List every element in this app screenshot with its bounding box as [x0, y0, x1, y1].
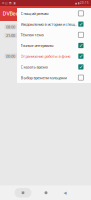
staticText: Сказать время [20, 64, 47, 69]
button[interactable]: Выбор времени кольцами [17, 72, 91, 83]
staticText: Уведомления в истории и спещ. [20, 21, 76, 27]
button[interactable]: Уведомления в истории и спещ. [17, 19, 91, 29]
button[interactable]: Спящий режим [17, 8, 91, 19]
staticText: Тёмная тема [20, 32, 43, 37]
staticText: DVBeep [2, 10, 21, 17]
button[interactable]: Recent apps [12, 185, 34, 200]
staticText: ◀ [63, 190, 66, 195]
button[interactable]: Тёмная тема [17, 29, 91, 40]
staticText: Точные интервалы [20, 43, 53, 48]
button[interactable]: Ограничение работы в фоне [17, 51, 91, 61]
button[interactable]: Back [56, 185, 74, 200]
staticText: Ограничение работы в фоне [20, 53, 70, 59]
button[interactable]: Сказать время [17, 61, 91, 72]
staticText: ✓ [79, 42, 83, 49]
staticText: 21:00 [6, 33, 15, 38]
staticText: ▲ ▮ 20:15 [75, 1, 89, 5]
staticText: ✓ [79, 64, 83, 70]
staticText: Спящий режим [20, 11, 48, 16]
button[interactable]: Home [37, 185, 55, 200]
staticText: ✉ ◱ ⬒ ◨ [2, 1, 16, 4]
staticText: 00:00 [6, 53, 15, 59]
button[interactable]: Точные интервалы [17, 40, 91, 51]
staticText: 08:00 [6, 24, 15, 29]
staticText: Выбор времени кольцами [20, 75, 66, 80]
staticText: ✓ [79, 53, 83, 59]
staticText: ✓ [79, 21, 83, 27]
